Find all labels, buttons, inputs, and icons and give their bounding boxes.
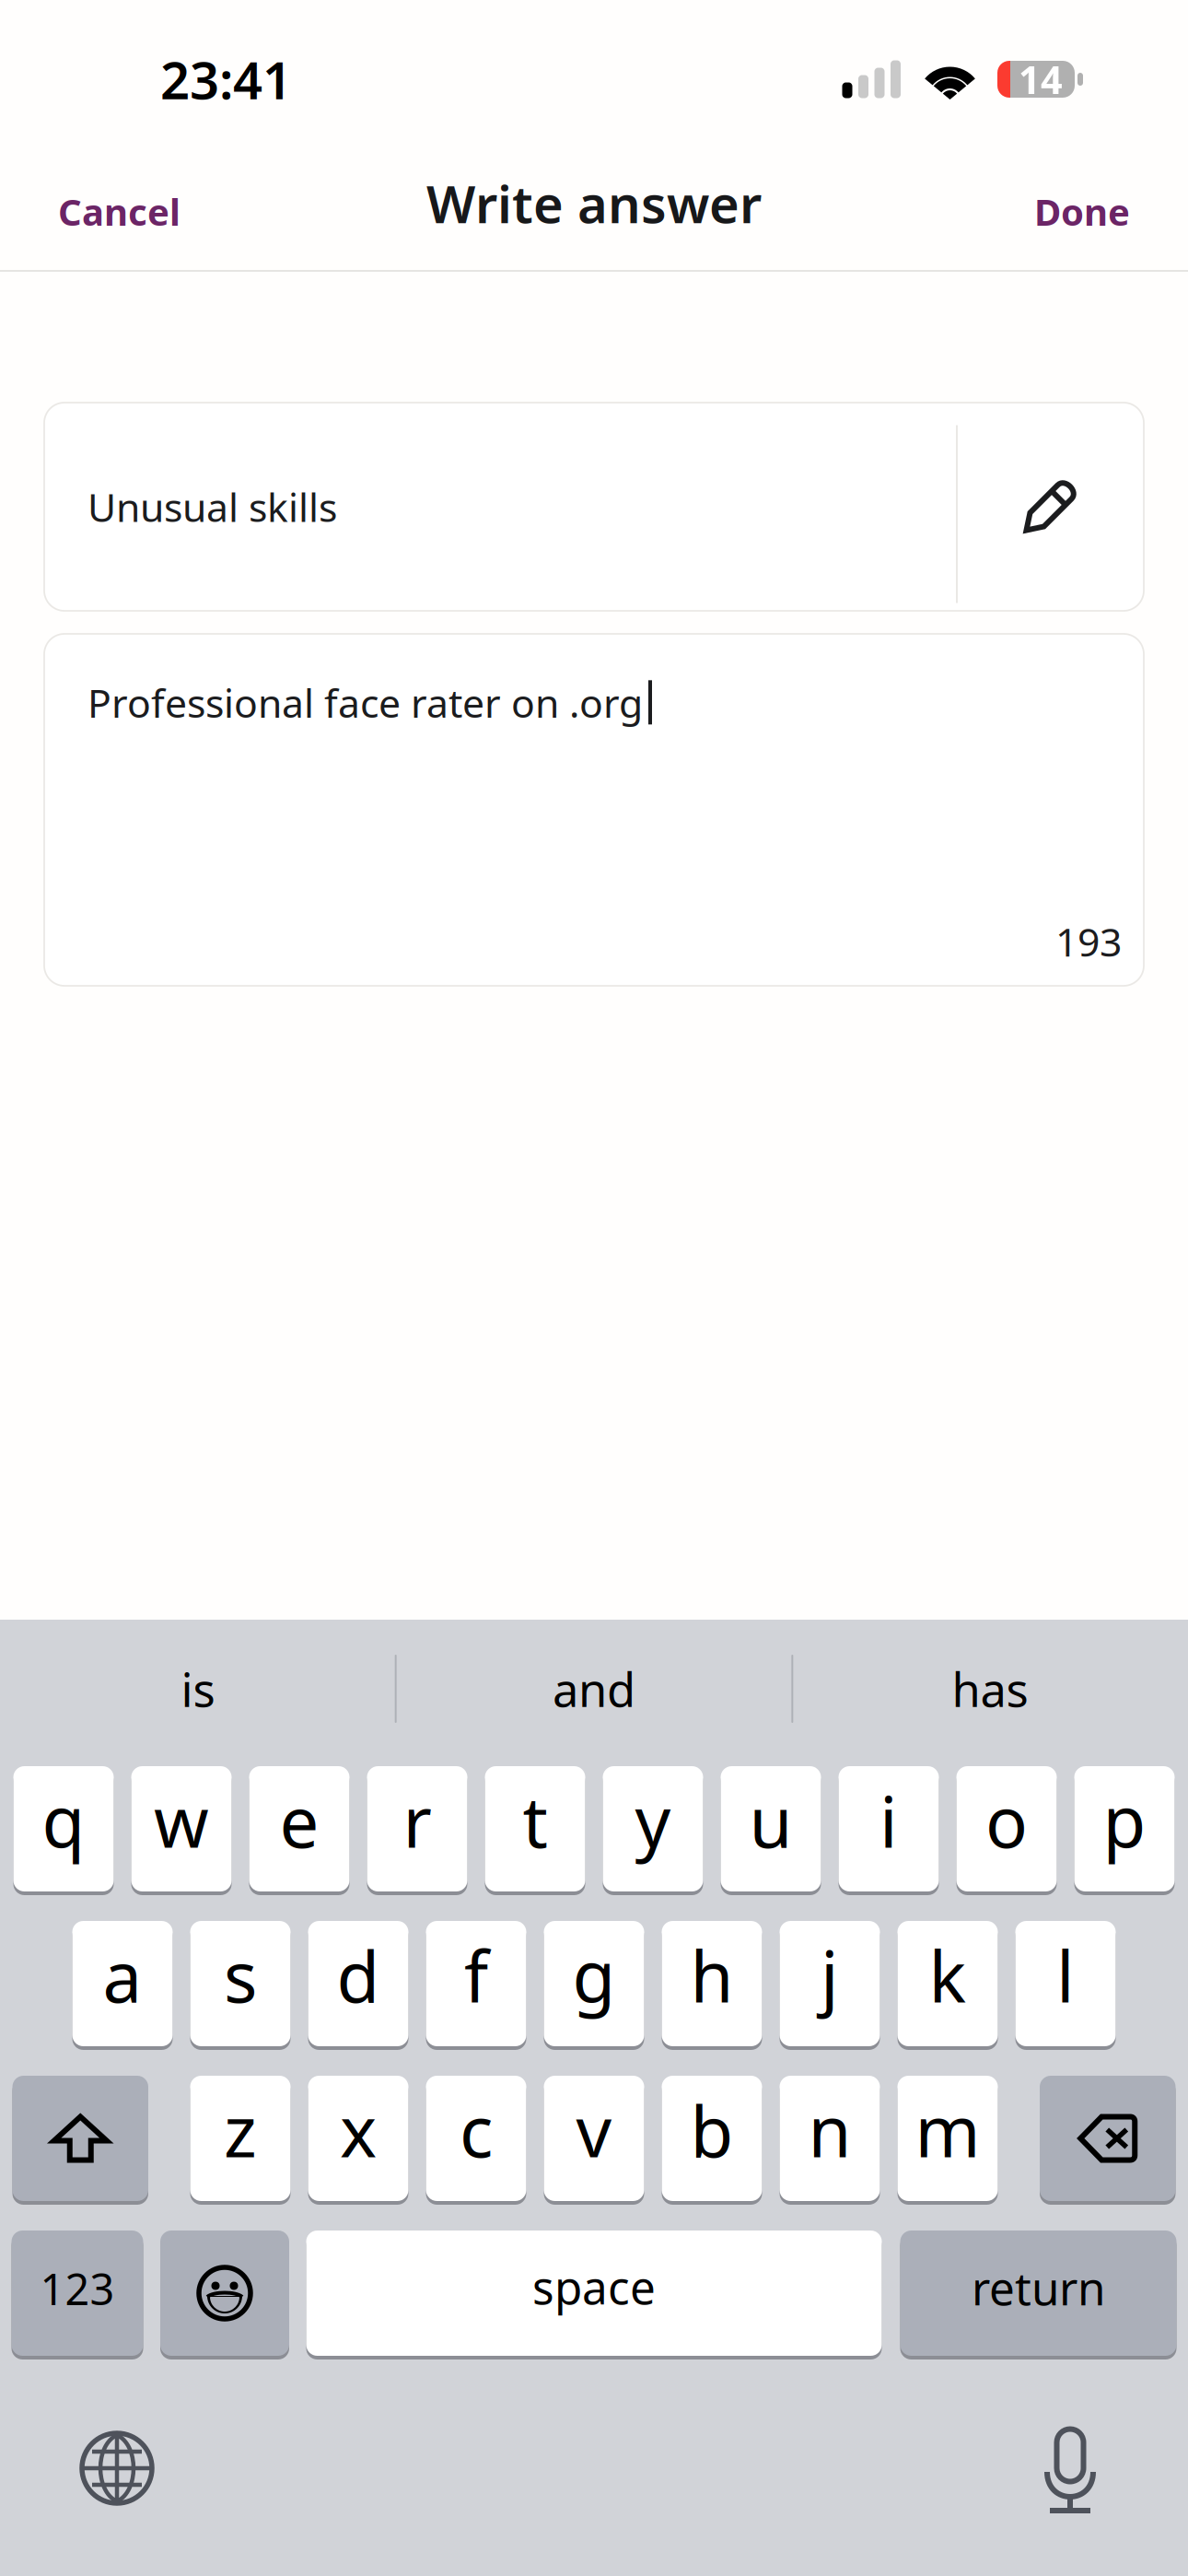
staticText: e xyxy=(280,1774,319,1867)
staticText: f xyxy=(464,1929,488,2022)
button[interactable]: Next keyboard xyxy=(52,2408,181,2528)
staticText: 23:41 xyxy=(160,45,292,114)
staticText: u xyxy=(749,1774,792,1867)
button[interactable]: h xyxy=(662,1919,762,2048)
staticText: Cancel xyxy=(58,187,181,236)
staticText: d xyxy=(337,1929,380,2022)
button[interactable]: r xyxy=(367,1764,467,1893)
button[interactable]: 123 xyxy=(12,2229,143,2358)
staticText: p xyxy=(1103,1774,1146,1867)
button[interactable]: t xyxy=(485,1764,585,1893)
staticText: 123 xyxy=(40,2260,115,2317)
staticText: b xyxy=(690,2084,734,2177)
staticText: o xyxy=(985,1774,1028,1867)
staticText: a xyxy=(103,1929,142,2022)
button[interactable]: b xyxy=(662,2074,762,2203)
staticText: Done xyxy=(1034,187,1130,236)
button[interactable]: n xyxy=(780,2074,880,2203)
staticText: is xyxy=(181,1658,215,1720)
button[interactable]: u xyxy=(721,1764,821,1893)
button[interactable]: Delete xyxy=(1040,2074,1176,2203)
button[interactable]: i xyxy=(839,1764,939,1893)
staticText: y xyxy=(635,1774,671,1867)
button[interactable]: has xyxy=(792,1655,1188,1723)
staticText: space xyxy=(532,2256,656,2317)
staticText: i xyxy=(879,1774,898,1867)
button[interactable]: f xyxy=(426,1919,526,2048)
button[interactable]: and xyxy=(396,1655,792,1723)
staticText: Unusual skills xyxy=(87,481,337,533)
button[interactable]: x xyxy=(308,2074,408,2203)
button[interactable]: return xyxy=(900,2229,1176,2358)
staticText: n xyxy=(808,2084,851,2177)
staticText: t xyxy=(523,1774,547,1867)
staticText: r xyxy=(403,1774,431,1867)
staticText: x xyxy=(340,2084,377,2177)
button[interactable]: s xyxy=(190,1919,291,2048)
staticText: Professional face rater on .org xyxy=(87,676,643,728)
button[interactable]: k xyxy=(897,1919,998,2048)
staticText: Write answer xyxy=(426,169,762,237)
button[interactable]: is xyxy=(0,1655,396,1723)
button[interactable]: y xyxy=(603,1764,703,1893)
button[interactable]: d xyxy=(308,1919,408,2048)
staticText: v xyxy=(576,2084,612,2177)
button[interactable]: Dictate xyxy=(1006,2408,1135,2528)
button[interactable]: v xyxy=(544,2074,644,2203)
staticText: s xyxy=(224,1929,257,2022)
button[interactable]: c xyxy=(426,2074,526,2203)
button[interactable]: l xyxy=(1015,1919,1116,2048)
button[interactable]: Done xyxy=(1016,157,1148,247)
staticText: k xyxy=(929,1929,967,2022)
staticText: c xyxy=(460,2084,493,2177)
button[interactable]: Emoji xyxy=(160,2229,289,2358)
button[interactable]: p xyxy=(1074,1764,1175,1893)
button[interactable]: m xyxy=(897,2074,998,2203)
staticText: w xyxy=(154,1774,209,1867)
staticText: q xyxy=(42,1774,85,1867)
staticText: h xyxy=(690,1929,734,2022)
staticText: return xyxy=(972,2257,1105,2318)
staticText: 14 xyxy=(1019,54,1063,105)
button[interactable]: a xyxy=(72,1919,173,2048)
staticText: l xyxy=(1056,1929,1075,2022)
button[interactable]: z xyxy=(190,2074,291,2203)
staticText: has xyxy=(952,1658,1028,1720)
staticText: g xyxy=(572,1929,616,2022)
button[interactable]: e xyxy=(249,1764,349,1893)
button[interactable]: w xyxy=(131,1764,232,1893)
staticText: j xyxy=(821,1929,839,2022)
staticText: z xyxy=(224,2084,257,2177)
button[interactable]: Shift xyxy=(12,2074,148,2203)
staticText: 193 xyxy=(1055,915,1122,967)
button[interactable]: j xyxy=(780,1919,880,2048)
staticText: m xyxy=(915,2084,980,2177)
button[interactable]: g xyxy=(544,1919,644,2048)
button[interactable]: Cancel xyxy=(40,157,199,247)
button[interactable]: q xyxy=(13,1764,114,1893)
button[interactable]: o xyxy=(956,1764,1057,1893)
button[interactable]: space xyxy=(306,2229,882,2358)
staticText: and xyxy=(553,1658,635,1720)
